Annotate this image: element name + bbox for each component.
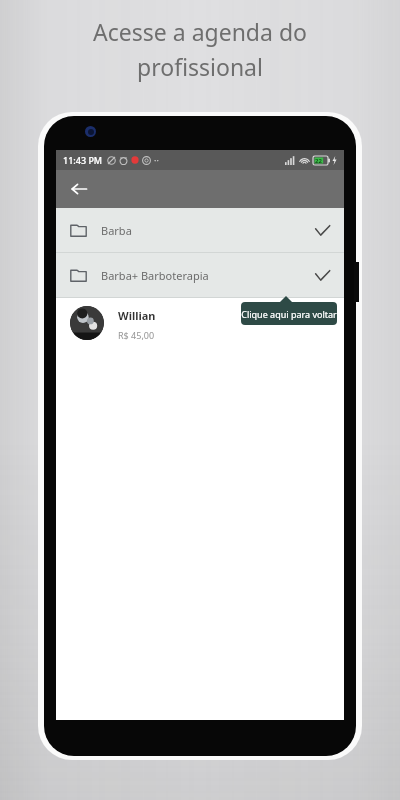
staticText: Willian	[118, 308, 156, 323]
staticText: Acesse a agenda do	[93, 16, 307, 47]
staticText: 22	[315, 157, 322, 165]
staticText: Clique aqui para voltar	[241, 308, 337, 320]
button[interactable]: Barba	[56, 208, 344, 252]
button[interactable]: Back	[62, 172, 96, 206]
staticText: 11:43 PM	[63, 154, 103, 166]
staticText: Barba+ Barboterapia	[101, 268, 209, 283]
staticText: R$ 45,00	[118, 329, 155, 341]
staticText: profissional	[137, 51, 263, 82]
button[interactable]: Barba+ Barboterapia	[56, 253, 344, 297]
button[interactable]: Clique aqui para voltar	[241, 302, 337, 325]
button[interactable]: Willian	[56, 298, 344, 368]
staticText: Barba	[101, 223, 132, 238]
staticText: ··	[154, 154, 159, 166]
